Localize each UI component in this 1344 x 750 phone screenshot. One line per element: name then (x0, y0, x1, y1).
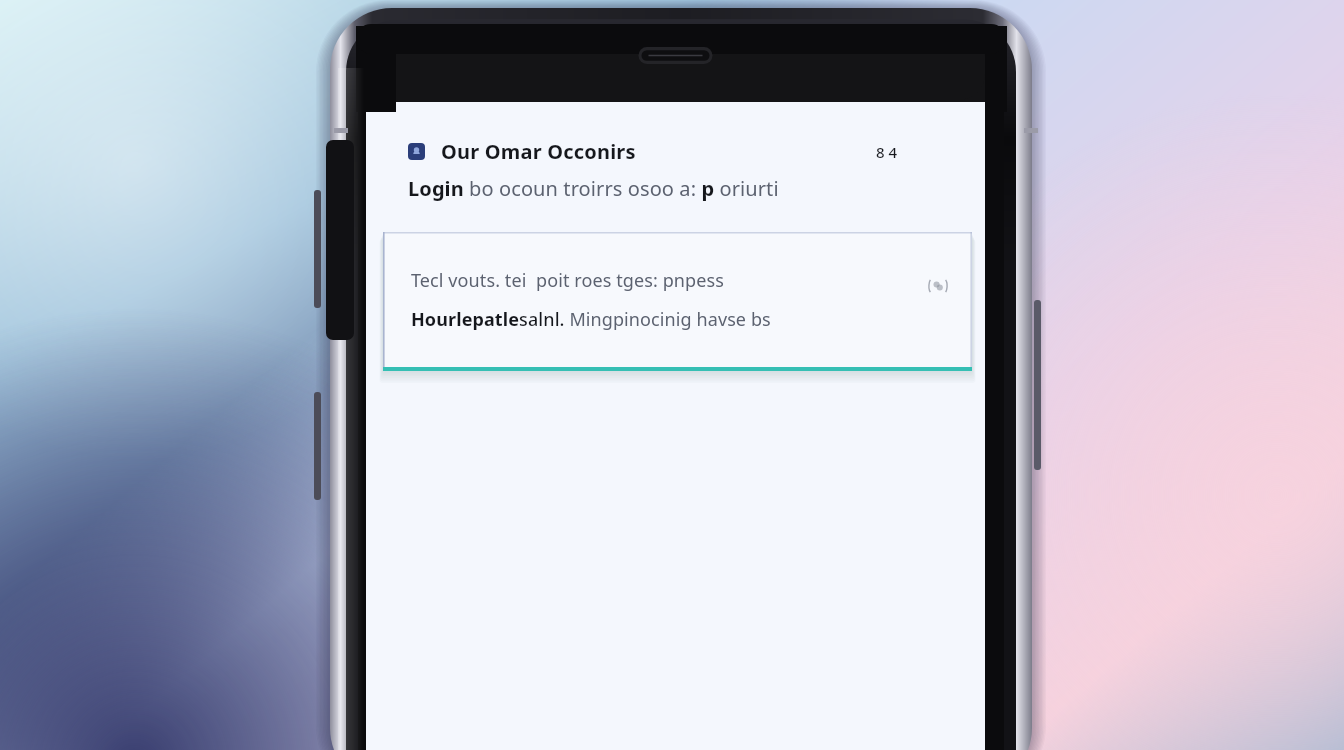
other: App badge (408, 143, 425, 160)
staticText: Tecl vouts. tei poit roes tges: pnpess (411, 268, 724, 293)
button[interactable]: App badge (408, 138, 943, 165)
staticText: Hourlepatlesalnl. Mingpinocinig havse bs (411, 307, 771, 332)
button[interactable]: More options (926, 274, 950, 298)
button[interactable]: Tecl vouts. tei poit roes tges: pnpess (383, 232, 972, 371)
staticText: Login bo ocoun troirrs osoo a: p oriurti (408, 175, 779, 202)
staticText: Our Omar Occonirs (441, 138, 636, 165)
staticText: 8 4 (876, 142, 898, 162)
